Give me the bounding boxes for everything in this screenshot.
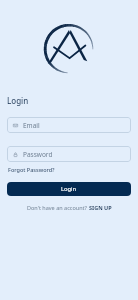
button[interactable]: Email bbox=[7, 117, 131, 133]
button[interactable]: Login bbox=[7, 182, 131, 196]
staticText: Login bbox=[7, 95, 29, 106]
button[interactable]: Don't have an account? bbox=[0, 204, 138, 211]
staticText: Password bbox=[23, 150, 53, 159]
staticText: Email bbox=[23, 121, 40, 130]
staticText: Login bbox=[61, 185, 77, 193]
staticText: SIGN UP bbox=[89, 204, 112, 211]
button[interactable]: Password bbox=[7, 146, 131, 162]
button[interactable]: Forgot Password? bbox=[8, 166, 55, 173]
staticText: Don't have an account? bbox=[27, 204, 89, 211]
